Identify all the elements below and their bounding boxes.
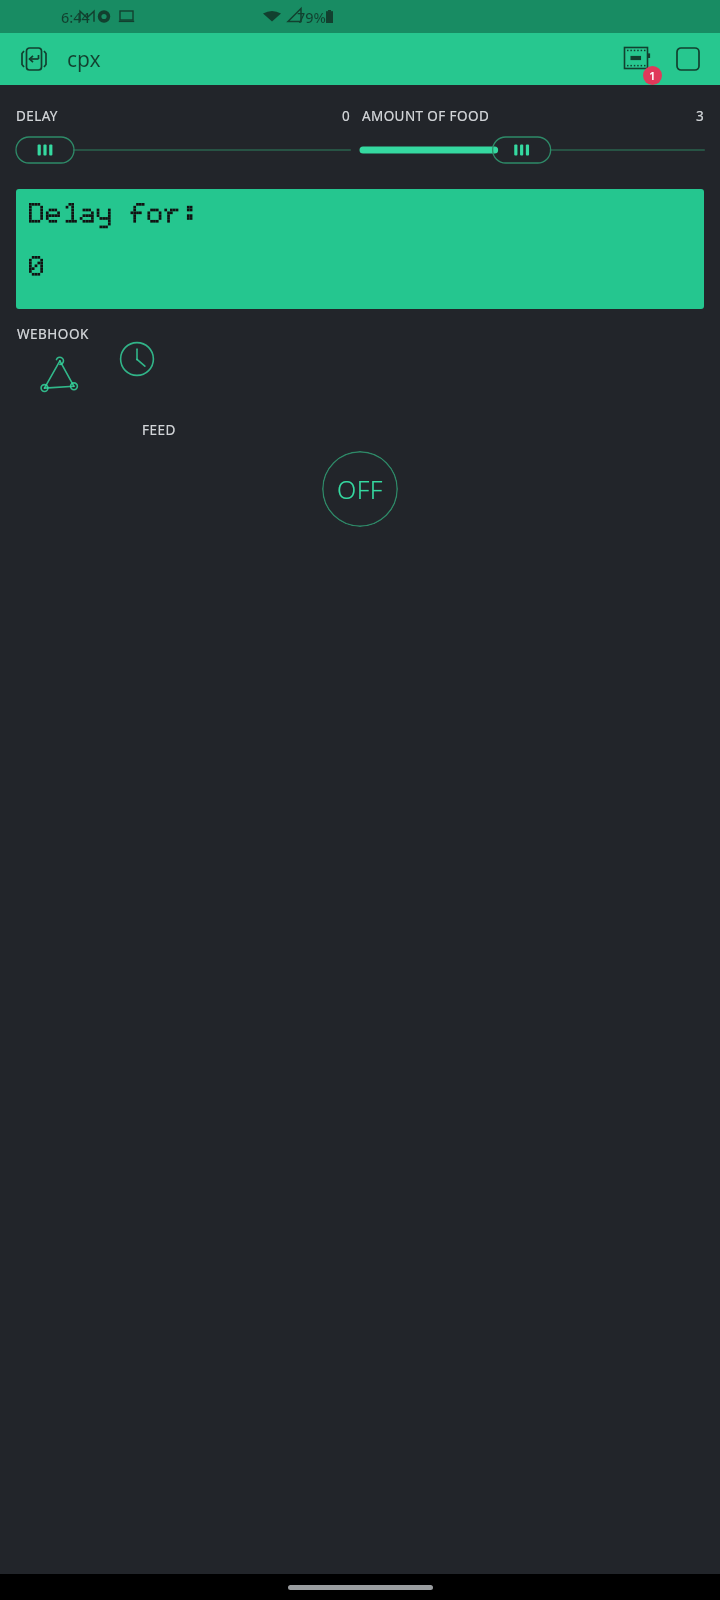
button[interactable] <box>362 133 704 167</box>
button[interactable]: Schedule <box>119 341 155 377</box>
staticText: FEED <box>142 421 176 439</box>
staticText: 79% <box>297 7 326 27</box>
staticText: 1 <box>649 68 656 83</box>
button[interactable]: Back <box>10 36 56 82</box>
staticText: 6:44 <box>61 7 90 27</box>
button[interactable]: Webhook <box>37 352 81 396</box>
staticText: WEBHOOK <box>17 325 89 343</box>
button[interactable]: OFF <box>322 451 398 527</box>
staticText: cpx <box>67 45 101 74</box>
button[interactable]: Connected board <box>614 36 660 82</box>
staticText: AMOUNT OF FOOD <box>362 107 490 125</box>
button[interactable] <box>16 189 704 309</box>
button[interactable]: Stop <box>666 37 710 81</box>
button[interactable] <box>16 133 350 167</box>
staticText: 0 <box>342 107 350 125</box>
staticText: DELAY <box>16 107 58 125</box>
staticText: OFF <box>337 472 383 506</box>
staticText: 3 <box>696 107 704 125</box>
